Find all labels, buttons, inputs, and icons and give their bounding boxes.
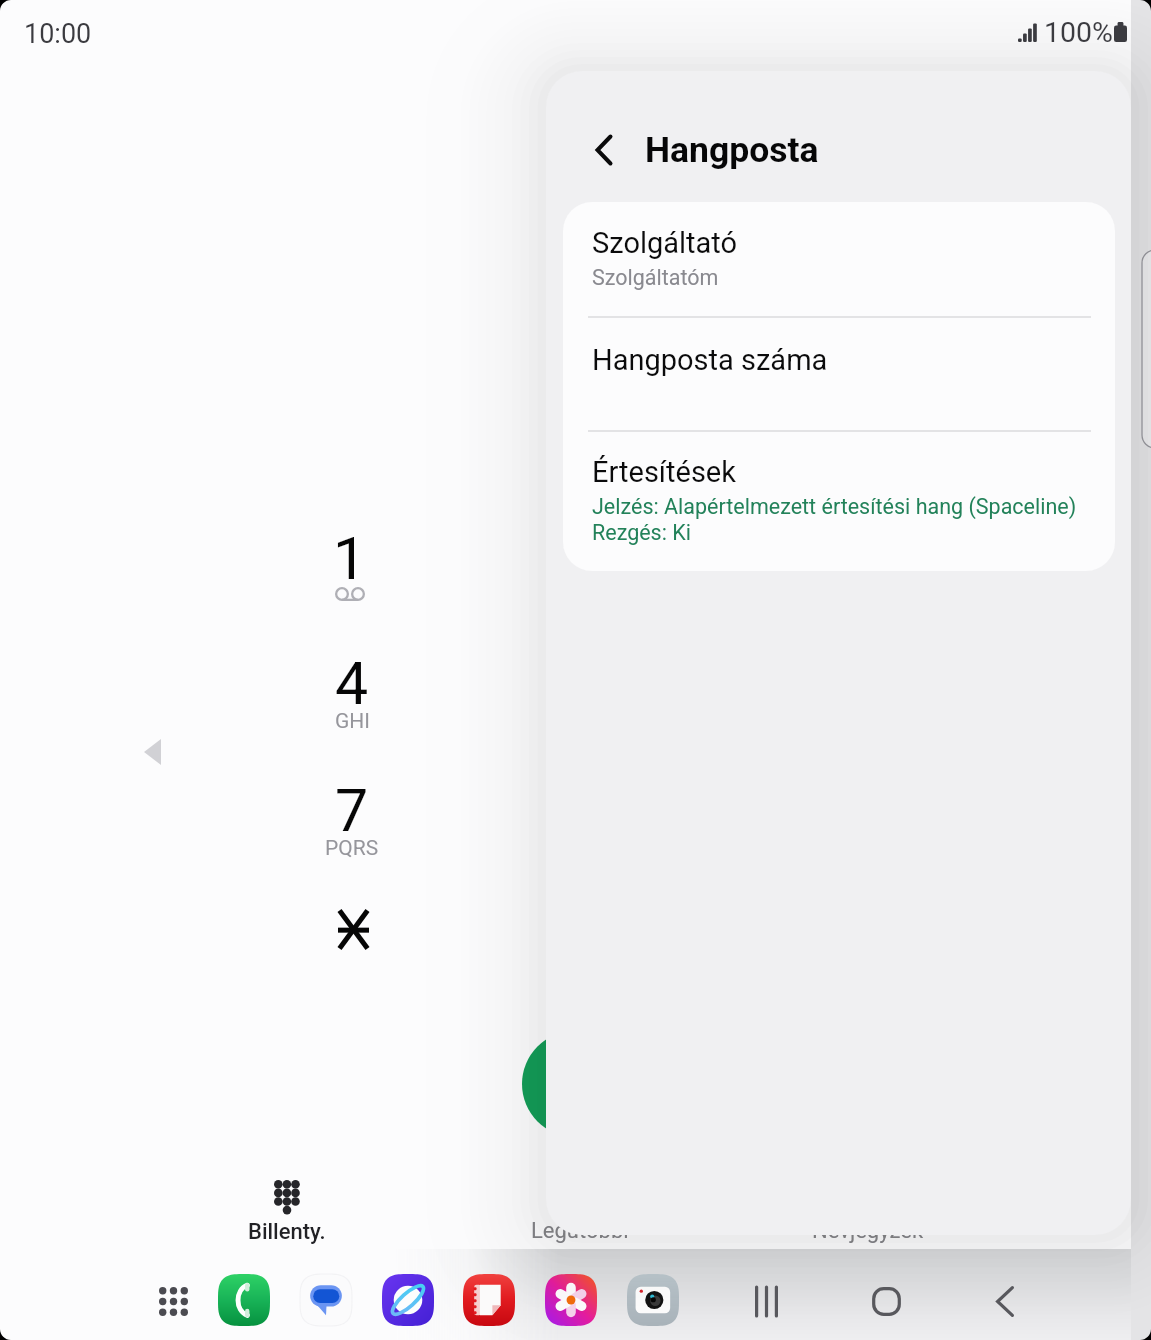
button[interactable]: Call: [522, 1031, 628, 1137]
staticText: Legutóbbi: [531, 1218, 629, 1244]
button[interactable]: 7: [294, 776, 410, 882]
staticText: 100%: [1044, 16, 1113, 49]
staticText: Hangposta száma: [592, 343, 828, 377]
button[interactable]: Értesítések: [563, 432, 1115, 571]
button[interactable]: Recents: [722, 1257, 810, 1340]
button[interactable]: Internet: [377, 1269, 439, 1331]
staticText: Értesítések: [592, 455, 736, 489]
staticText: Jelzés: Alapértelmezett értesítési hang …: [592, 494, 1077, 519]
button[interactable]: Home: [842, 1257, 930, 1340]
staticText: 1: [333, 524, 367, 593]
staticText: Szolgáltatóm: [592, 265, 719, 290]
button[interactable]: Szolgáltató: [563, 202, 1115, 317]
button[interactable]: Messages: [295, 1269, 357, 1331]
staticText: 10:00: [24, 18, 92, 50]
button[interactable]: Navigate up: [570, 116, 638, 184]
button[interactable]: Billenty.: [227, 1180, 347, 1245]
button[interactable]: 4: [294, 649, 410, 755]
button[interactable]: All apps: [139, 1267, 207, 1335]
staticText: Hangposta: [645, 129, 819, 171]
staticText: 4: [335, 649, 369, 718]
button[interactable]: Back: [961, 1257, 1049, 1340]
other: Expand panel: [143, 737, 162, 767]
button[interactable]: Notes: [458, 1269, 520, 1331]
staticText: Szolgáltató: [592, 226, 738, 260]
staticText: Billenty.: [248, 1219, 326, 1245]
button[interactable]: Gallery: [540, 1269, 602, 1331]
button[interactable]: Camera: [622, 1269, 684, 1331]
staticText: GHI: [335, 709, 370, 734]
staticText: PQRS: [325, 836, 379, 861]
staticText: 7: [335, 776, 369, 845]
button[interactable]: 1: [292, 524, 408, 630]
button[interactable]: Star: [295, 889, 411, 993]
button[interactable]: Phone: [213, 1269, 275, 1331]
staticText: Rezgés: Ki: [592, 520, 691, 545]
button[interactable]: Hangposta száma: [563, 318, 1115, 430]
staticText: Névjegyzék: [812, 1218, 924, 1244]
